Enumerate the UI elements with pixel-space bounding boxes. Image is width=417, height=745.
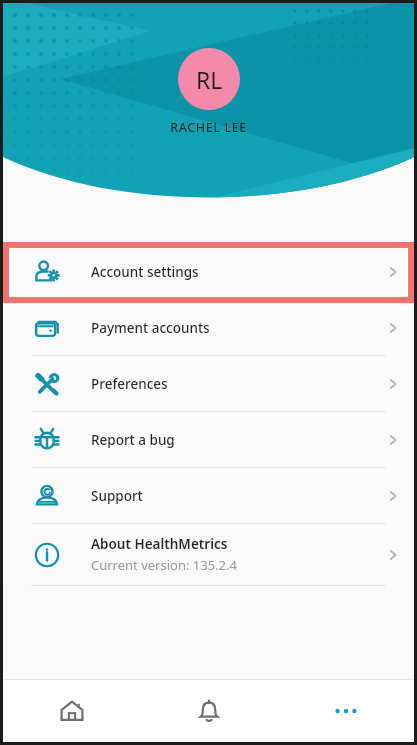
button[interactable]: Support: [3, 468, 414, 523]
button[interactable]: Notifications: [140, 680, 277, 742]
staticText: Report a bug: [91, 431, 175, 449]
button[interactable]: More: [277, 680, 414, 742]
staticText: Preferences: [91, 375, 168, 393]
button[interactable]: Account settings: [3, 244, 414, 299]
staticText: About HealthMetrics: [91, 535, 228, 553]
button[interactable]: Payment accounts: [3, 300, 414, 355]
staticText: Account settings: [91, 263, 199, 281]
button[interactable]: Report a bug: [3, 412, 414, 467]
staticText: RACHEL LEE: [170, 119, 247, 136]
staticText: Payment accounts: [91, 319, 210, 337]
staticText: RL: [196, 64, 223, 95]
button[interactable]: About HealthMetrics: [3, 524, 414, 585]
staticText: Support: [91, 487, 143, 505]
staticText: Current version: 135.2.4: [91, 556, 237, 574]
button[interactable]: Preferences: [3, 356, 414, 411]
button[interactable]: Home: [3, 680, 140, 742]
